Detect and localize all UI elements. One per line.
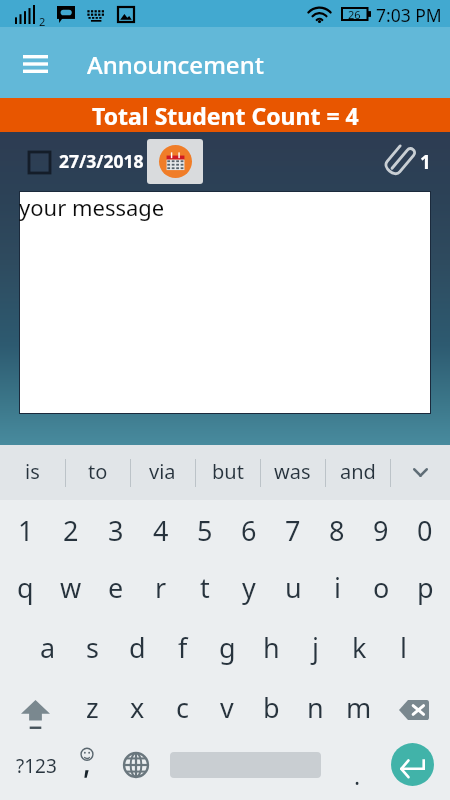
button[interactable]: i bbox=[315, 560, 359, 620]
staticText: j bbox=[312, 629, 319, 666]
button[interactable]: 1 bbox=[3, 500, 48, 560]
button[interactable]: u bbox=[271, 560, 315, 620]
button[interactable]: Pick date bbox=[147, 139, 203, 184]
button[interactable]: r bbox=[138, 560, 183, 620]
button[interactable]: l bbox=[381, 620, 425, 680]
button[interactable]: z bbox=[70, 680, 115, 740]
button[interactable]: Backspace bbox=[385, 680, 444, 740]
button[interactable]: Shift bbox=[6, 680, 66, 740]
staticText: is bbox=[25, 458, 40, 485]
button[interactable]: f bbox=[160, 620, 205, 680]
staticText: Total Student Count = 4 bbox=[92, 100, 359, 131]
staticText: 4 bbox=[153, 512, 169, 549]
button[interactable]: o bbox=[359, 560, 403, 620]
staticText: s bbox=[86, 629, 99, 666]
staticText: 27/3/2018 bbox=[59, 149, 144, 173]
button[interactable]: w bbox=[48, 560, 93, 620]
staticText: g bbox=[219, 629, 236, 666]
staticText: r bbox=[155, 569, 167, 606]
button[interactable]: was bbox=[260, 445, 325, 500]
button[interactable]: and bbox=[325, 445, 390, 500]
staticText: q bbox=[17, 569, 34, 606]
staticText: l bbox=[400, 629, 407, 666]
button[interactable]: k bbox=[337, 620, 381, 680]
button[interactable]: . bbox=[330, 740, 385, 800]
button[interactable]: More suggestions bbox=[390, 445, 450, 500]
button[interactable]: Space bbox=[160, 740, 330, 800]
button[interactable]: 5 bbox=[183, 500, 227, 560]
button[interactable]: but bbox=[195, 445, 260, 500]
staticText: ?123 bbox=[16, 753, 57, 779]
staticText: y bbox=[242, 569, 256, 606]
button[interactable]: n bbox=[293, 680, 337, 740]
button[interactable]: 3 bbox=[93, 500, 138, 560]
staticText: f bbox=[178, 629, 188, 666]
button[interactable]: s bbox=[70, 620, 115, 680]
staticText: but bbox=[212, 458, 244, 485]
button[interactable]: 6 bbox=[227, 500, 271, 560]
staticText: was bbox=[274, 458, 311, 485]
button[interactable]: g bbox=[205, 620, 249, 680]
staticText: 7:03 PM bbox=[376, 3, 442, 27]
staticText: i bbox=[334, 569, 341, 606]
staticText: 1 bbox=[18, 512, 34, 549]
staticText: v bbox=[220, 689, 234, 726]
button[interactable]: via bbox=[130, 445, 195, 500]
button[interactable]: to bbox=[65, 445, 130, 500]
staticText: 3 bbox=[108, 512, 124, 549]
staticText: Announcement bbox=[87, 48, 264, 81]
button[interactable]: Enter bbox=[385, 740, 444, 800]
staticText: c bbox=[176, 689, 189, 726]
staticText: 8 bbox=[329, 512, 345, 549]
staticText: and bbox=[340, 458, 376, 485]
button[interactable]: 2 bbox=[48, 500, 93, 560]
button[interactable]: Select announcement bbox=[29, 152, 50, 173]
staticText: b bbox=[263, 689, 280, 726]
staticText: k bbox=[352, 629, 367, 666]
staticText: d bbox=[129, 629, 146, 666]
button[interactable]: h bbox=[249, 620, 293, 680]
button[interactable]: b bbox=[249, 680, 293, 740]
staticText: z bbox=[86, 689, 99, 726]
button[interactable]: 7 bbox=[271, 500, 315, 560]
button[interactable]: 4 bbox=[138, 500, 183, 560]
button[interactable]: t bbox=[183, 560, 227, 620]
button[interactable]: ?123 bbox=[0, 740, 68, 800]
button[interactable]: m bbox=[337, 680, 381, 740]
staticText: 2 bbox=[63, 512, 79, 549]
button[interactable]: 9 bbox=[359, 500, 403, 560]
staticText: w bbox=[60, 569, 82, 606]
button[interactable]: is bbox=[0, 445, 65, 500]
button[interactable]: Emoji and comma bbox=[68, 740, 112, 800]
staticText: p bbox=[417, 569, 434, 606]
button[interactable]: x bbox=[115, 680, 160, 740]
staticText: a bbox=[40, 629, 56, 666]
button[interactable]: Message body bbox=[20, 192, 430, 413]
button[interactable]: 8 bbox=[315, 500, 359, 560]
staticText: 0 bbox=[417, 512, 433, 549]
staticText: via bbox=[149, 458, 176, 485]
button[interactable]: 0 bbox=[403, 500, 447, 560]
button[interactable]: d bbox=[115, 620, 160, 680]
staticText: e bbox=[108, 569, 124, 606]
staticText: t bbox=[200, 569, 210, 606]
button[interactable]: c bbox=[160, 680, 205, 740]
button[interactable]: e bbox=[93, 560, 138, 620]
button[interactable]: v bbox=[205, 680, 249, 740]
button[interactable]: Attach file bbox=[382, 142, 416, 178]
staticText: o bbox=[373, 569, 390, 606]
staticText: 7 bbox=[285, 512, 301, 549]
button[interactable]: y bbox=[227, 560, 271, 620]
button[interactable]: p bbox=[403, 560, 447, 620]
staticText: x bbox=[130, 689, 145, 726]
button[interactable]: q bbox=[3, 560, 48, 620]
staticText: 26 bbox=[348, 7, 361, 19]
button[interactable]: a bbox=[25, 620, 70, 680]
staticText: h bbox=[263, 629, 280, 666]
staticText: 6 bbox=[241, 512, 257, 549]
staticText: u bbox=[285, 569, 302, 606]
button[interactable]: Open navigation menu bbox=[13, 42, 57, 86]
button[interactable]: Change keyboard language bbox=[112, 740, 160, 800]
staticText: 2 bbox=[39, 14, 46, 29]
button[interactable]: j bbox=[293, 620, 337, 680]
